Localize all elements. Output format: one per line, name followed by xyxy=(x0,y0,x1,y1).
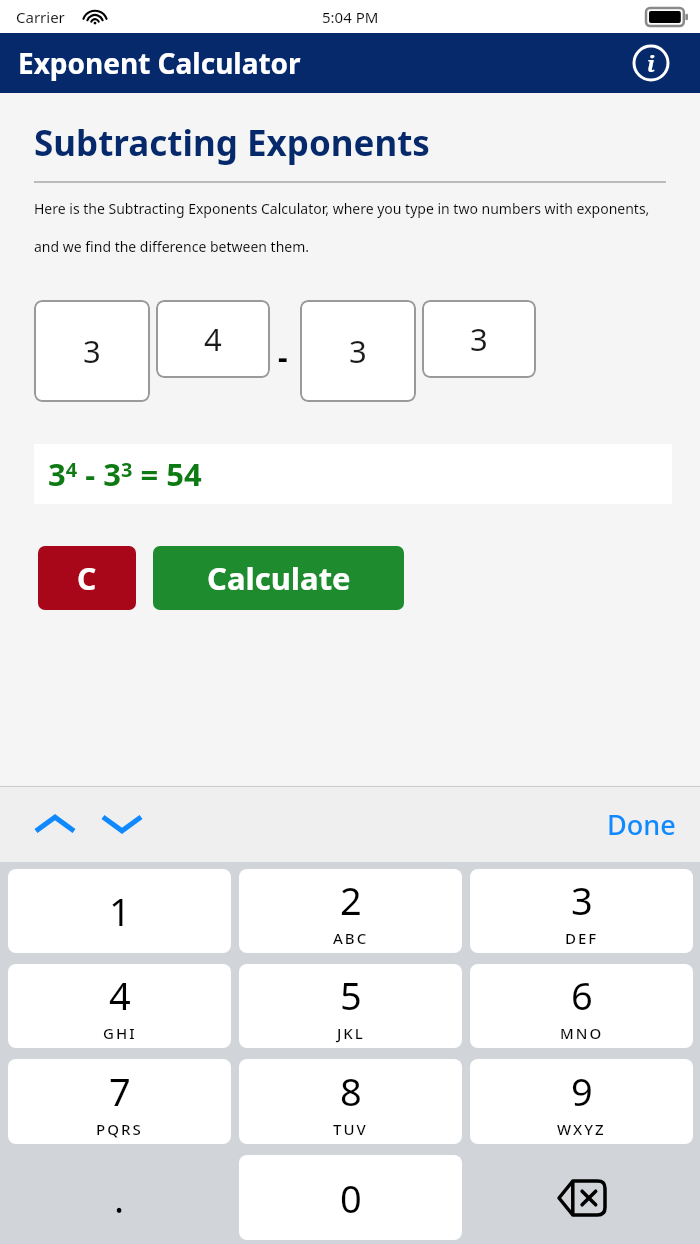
button[interactable]: Calculate xyxy=(153,546,404,610)
staticText: ABC xyxy=(333,928,369,948)
staticText: 6 xyxy=(571,969,593,1021)
button[interactable]: 5 xyxy=(239,964,462,1048)
button[interactable]: 8 xyxy=(239,1059,462,1144)
button[interactable]: 4 xyxy=(8,964,231,1048)
staticText: 3 xyxy=(470,318,488,360)
staticText: 2 xyxy=(340,874,362,926)
button[interactable]: 7 xyxy=(8,1059,231,1144)
staticText: 8 xyxy=(340,1065,362,1117)
button[interactable]: 3 xyxy=(300,300,416,402)
staticText: 4 xyxy=(204,318,222,360)
button[interactable]: 4 xyxy=(156,300,270,378)
button[interactable]: C xyxy=(38,546,136,610)
staticText: 3 xyxy=(83,330,101,372)
button[interactable]: Decimal point xyxy=(8,1155,231,1240)
staticText: Carrier xyxy=(16,7,65,27)
button[interactable]: 2 xyxy=(239,869,462,953)
staticText: - xyxy=(278,336,288,377)
staticText: 1 xyxy=(109,885,131,937)
staticText: Exponent Calculator xyxy=(18,44,301,82)
staticText: Subtracting Exponents xyxy=(34,119,430,167)
staticText: WXYZ xyxy=(557,1119,606,1139)
staticText: MNO xyxy=(560,1023,604,1043)
button[interactable]: Done xyxy=(607,806,676,843)
staticText: 5:04 PM xyxy=(322,7,379,27)
button[interactable]: 0 xyxy=(239,1155,462,1240)
staticText: C xyxy=(77,558,97,599)
staticText: PQRS xyxy=(96,1119,143,1139)
button[interactable]: 9 xyxy=(470,1059,693,1144)
staticText: TUV xyxy=(333,1119,368,1139)
staticText: 34 - 33 = 54 xyxy=(48,453,202,495)
button[interactable]: Next field xyxy=(97,799,147,849)
staticText: Here is the Subtracting Exponents Calcul… xyxy=(34,199,660,256)
button[interactable]: Info xyxy=(631,43,671,83)
button[interactable]: 3 xyxy=(470,869,693,953)
staticText: Calculate xyxy=(207,557,351,599)
staticText: 3 xyxy=(349,330,367,372)
staticText: . xyxy=(114,1172,125,1224)
button[interactable]: 6 xyxy=(470,964,693,1048)
staticText: 7 xyxy=(109,1065,131,1117)
staticText: 5 xyxy=(340,969,362,1021)
staticText: 4 xyxy=(109,969,131,1021)
button[interactable]: 1 xyxy=(8,869,231,953)
staticText: Done xyxy=(607,806,676,843)
button[interactable]: 3 xyxy=(34,300,150,402)
button[interactable]: Previous field xyxy=(30,799,80,849)
button[interactable]: Backspace xyxy=(470,1155,693,1240)
staticText: i xyxy=(647,48,655,78)
button[interactable]: 3 xyxy=(422,300,536,378)
staticText: 9 xyxy=(571,1065,593,1117)
staticText: DEF xyxy=(565,928,599,948)
staticText: JKL xyxy=(337,1023,365,1043)
staticText: GHI xyxy=(103,1023,137,1043)
staticText: 0 xyxy=(340,1172,362,1224)
staticText: 3 xyxy=(571,874,593,926)
